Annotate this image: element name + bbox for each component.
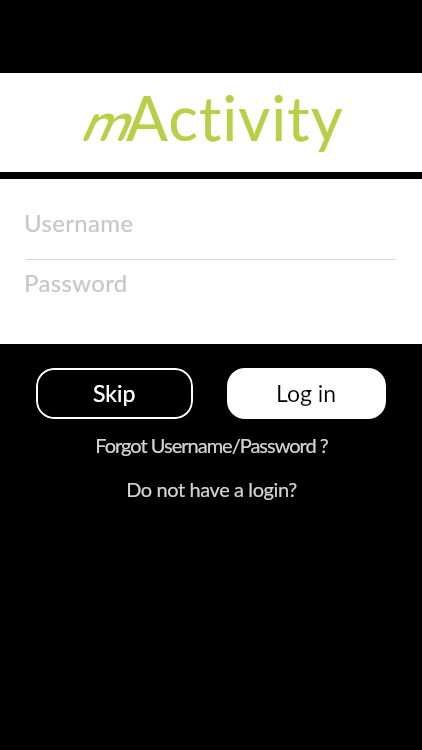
staticText: Password xyxy=(24,268,128,297)
staticText: Skip xyxy=(93,379,136,407)
button[interactable]: Log in xyxy=(227,368,386,419)
button[interactable]: Password field xyxy=(0,260,422,344)
staticText: m xyxy=(79,90,126,154)
button[interactable]: Forgot Username/Password ? xyxy=(0,433,422,457)
staticText: Forgot Username/Password ? xyxy=(95,433,328,457)
button[interactable]: Do not have a login? xyxy=(0,477,422,501)
staticText: Activity xyxy=(126,80,344,154)
button[interactable]: Skip xyxy=(36,368,193,419)
staticText: Do not have a login? xyxy=(126,477,297,501)
staticText: Username xyxy=(24,208,134,237)
staticText: Log in xyxy=(276,379,337,407)
button[interactable]: Username field xyxy=(0,179,422,259)
